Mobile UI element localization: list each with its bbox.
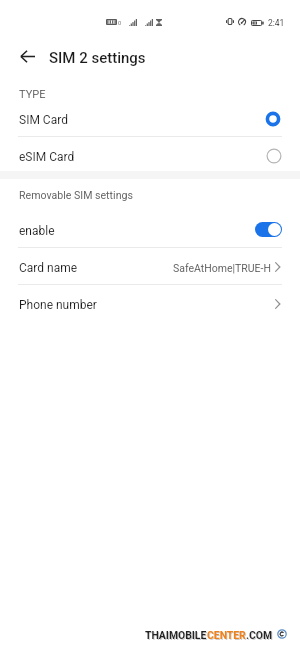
staticText: Phone number bbox=[19, 298, 97, 312]
staticText: .COM bbox=[246, 629, 273, 641]
staticText: TYPE bbox=[19, 88, 46, 101]
staticText: CENTER bbox=[207, 629, 246, 641]
button[interactable]: enable bbox=[0, 213, 300, 249]
button[interactable]: Phone number bbox=[0, 286, 300, 323]
staticText: SafeAtHome|TRUE-H bbox=[173, 262, 271, 274]
button[interactable]: eSIM Card bbox=[0, 139, 300, 175]
button[interactable]: Back bbox=[14, 43, 41, 70]
staticText: CENTER bbox=[208, 630, 247, 642]
staticText: Removable SIM settings bbox=[19, 189, 133, 201]
button[interactable]: SIM Card bbox=[0, 102, 300, 138]
staticText: 2:41 bbox=[268, 18, 285, 28]
staticText: THAIMOBILE bbox=[145, 629, 207, 641]
staticText: 0 bbox=[118, 20, 122, 27]
staticText: Card name bbox=[19, 261, 78, 275]
staticText: THAIMOBILE bbox=[146, 630, 208, 642]
staticText: SIM Card bbox=[19, 113, 68, 127]
button[interactable]: Card name bbox=[0, 249, 300, 286]
staticText: .COM bbox=[247, 630, 274, 642]
staticText: enable bbox=[19, 224, 55, 238]
staticText: eSIM Card bbox=[19, 150, 75, 164]
staticText: SIM 2 settings bbox=[49, 49, 146, 67]
